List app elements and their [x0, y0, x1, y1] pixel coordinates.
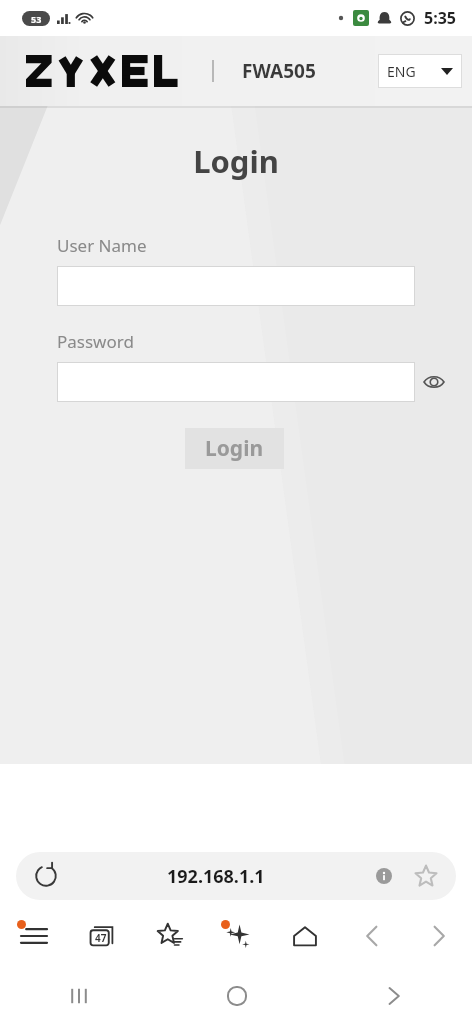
- staticText: 5:35: [424, 7, 456, 29]
- staticText: FWA505: [242, 58, 316, 84]
- button[interactable]: [57, 266, 415, 306]
- button[interactable]: Bookmarks: [136, 912, 204, 960]
- staticText: 47: [95, 931, 107, 945]
- button[interactable]: [57, 362, 415, 402]
- staticText: Password: [57, 330, 134, 353]
- button[interactable]: Home: [158, 968, 315, 1024]
- staticText: 192.168.1.1: [167, 864, 265, 889]
- button[interactable]: Menu: [0, 912, 68, 960]
- button[interactable]: Page info: [370, 862, 398, 890]
- button[interactable]: Home: [271, 912, 338, 960]
- button[interactable]: Recent apps: [0, 968, 158, 1024]
- button[interactable]: Tabs: [68, 912, 136, 960]
- staticText: User Name: [57, 234, 147, 257]
- staticText: Login: [205, 434, 264, 463]
- button[interactable]: ENG: [378, 54, 462, 88]
- button[interactable]: Bookmark: [410, 860, 442, 892]
- button[interactable]: Forward: [405, 912, 472, 960]
- staticText: ENG: [387, 62, 416, 81]
- button[interactable]: Reload: [16, 852, 456, 900]
- button[interactable]: Login: [185, 428, 284, 469]
- button[interactable]: Back: [338, 912, 405, 960]
- button[interactable]: Reload: [30, 860, 62, 892]
- button[interactable]: Assistant: [204, 912, 271, 960]
- staticText: 53: [31, 13, 42, 25]
- button[interactable]: Show password: [419, 367, 449, 397]
- staticText: Login: [0, 140, 472, 182]
- button[interactable]: Back: [315, 968, 472, 1024]
